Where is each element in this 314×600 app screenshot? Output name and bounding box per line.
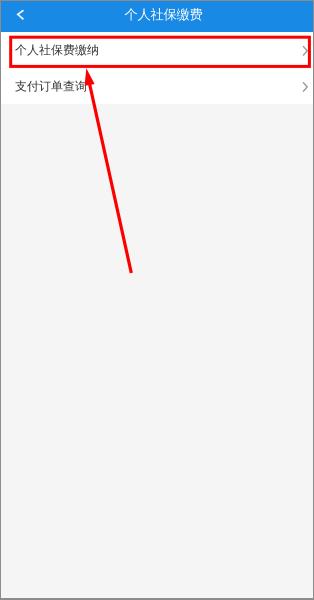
button[interactable]: 支付订单查询 [0, 68, 314, 104]
button[interactable]: Back [0, 0, 40, 32]
button[interactable]: 个人社保费缴纳 [0, 32, 314, 68]
staticText: 个人社保缴费 [124, 6, 202, 23]
staticText: 支付订单查询 [15, 79, 87, 93]
staticText: 个人社保费缴纳 [15, 43, 99, 57]
